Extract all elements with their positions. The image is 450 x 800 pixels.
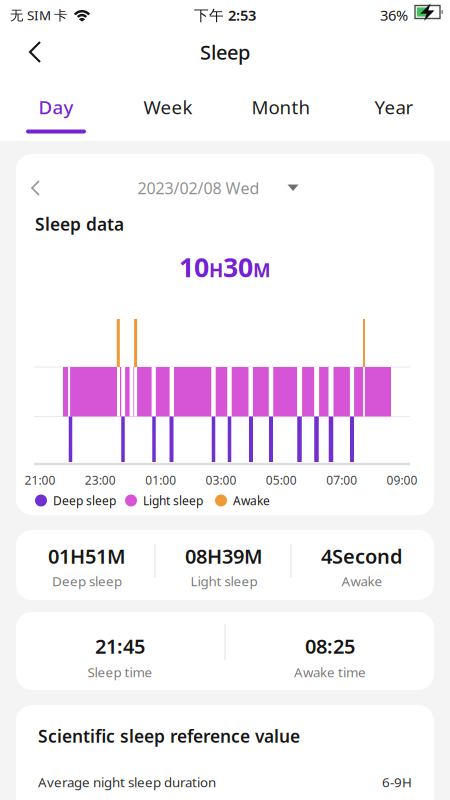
staticText: 4Second <box>321 543 403 569</box>
staticText: 36% <box>380 5 408 25</box>
staticText: 09:00 <box>386 472 417 488</box>
staticText: 无 SIM 卡 <box>10 6 67 24</box>
button[interactable] <box>25 177 47 199</box>
staticText: Sleep time <box>87 663 152 681</box>
staticText: 08H39M <box>185 543 263 569</box>
staticText: Scientific sleep reference value <box>38 724 300 747</box>
button[interactable]: 2023/02/08 Wed <box>137 173 298 203</box>
staticText: Deep sleep <box>52 572 122 590</box>
staticText: 21:00 <box>24 472 55 488</box>
staticText: 6-9H <box>382 773 412 791</box>
staticText: 2023/02/08 Wed <box>137 177 259 199</box>
button[interactable]: Year <box>344 87 444 127</box>
button[interactable]: Week <box>118 87 218 127</box>
staticText: 08:25 <box>305 633 355 659</box>
staticText: Deep sleep <box>53 492 116 508</box>
staticText: Week <box>143 95 192 119</box>
staticText: 05:00 <box>266 472 297 488</box>
staticText: Light sleep <box>143 492 203 508</box>
staticText: Sleep data <box>35 212 124 235</box>
staticText: 03:00 <box>205 472 236 488</box>
staticText: 07:00 <box>326 472 357 488</box>
staticText: Month <box>251 95 310 119</box>
staticText: 21:45 <box>95 633 145 659</box>
staticText: 01H51M <box>48 543 126 569</box>
staticText: Awake time <box>294 663 366 681</box>
staticText: 23:00 <box>85 472 116 488</box>
staticText: Awake <box>341 572 382 590</box>
staticText: Average night sleep duration <box>38 773 216 791</box>
staticText: 10H30M <box>179 249 271 285</box>
staticText: Awake <box>233 492 270 508</box>
staticText: 01:00 <box>145 472 176 488</box>
button[interactable]: Month <box>231 87 331 127</box>
button[interactable] <box>16 37 60 67</box>
staticText: Year <box>374 95 413 119</box>
button[interactable]: Day <box>6 87 106 127</box>
staticText: 下午 2:53 <box>194 5 256 25</box>
staticText: Light sleep <box>190 572 257 590</box>
staticText: Day <box>38 95 73 119</box>
staticText: Sleep <box>200 39 250 65</box>
